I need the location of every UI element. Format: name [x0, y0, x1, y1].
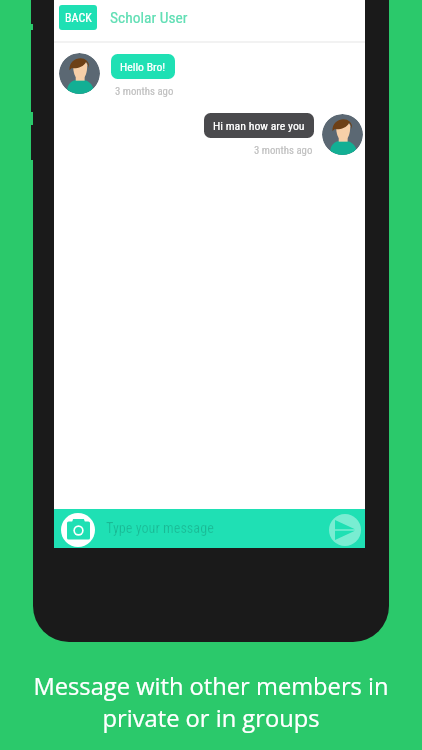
button[interactable]: Attach photo: [61, 513, 95, 547]
button[interactable]: Hello Bro!: [111, 54, 175, 79]
button[interactable]: Scholar User profile picture: [59, 53, 100, 94]
staticText: Hello Bro!: [120, 60, 166, 74]
staticText: 3 months ago: [254, 144, 313, 157]
staticText: BACK: [65, 11, 92, 25]
staticText: Message with other members in private or…: [33, 670, 389, 734]
button[interactable]: Send: [329, 514, 361, 546]
button[interactable]: Type your message: [54, 509, 365, 548]
staticText: 3 months ago: [115, 85, 174, 98]
staticText: Type your message: [106, 520, 214, 537]
button[interactable]: Scholar User: [110, 5, 188, 30]
button[interactable]: Hi man how are you: [204, 113, 314, 138]
staticText: Scholar User: [110, 9, 188, 27]
staticText: Hi man how are you: [213, 119, 305, 133]
button[interactable]: BACK: [59, 5, 97, 30]
button[interactable]: My profile picture: [322, 114, 363, 155]
